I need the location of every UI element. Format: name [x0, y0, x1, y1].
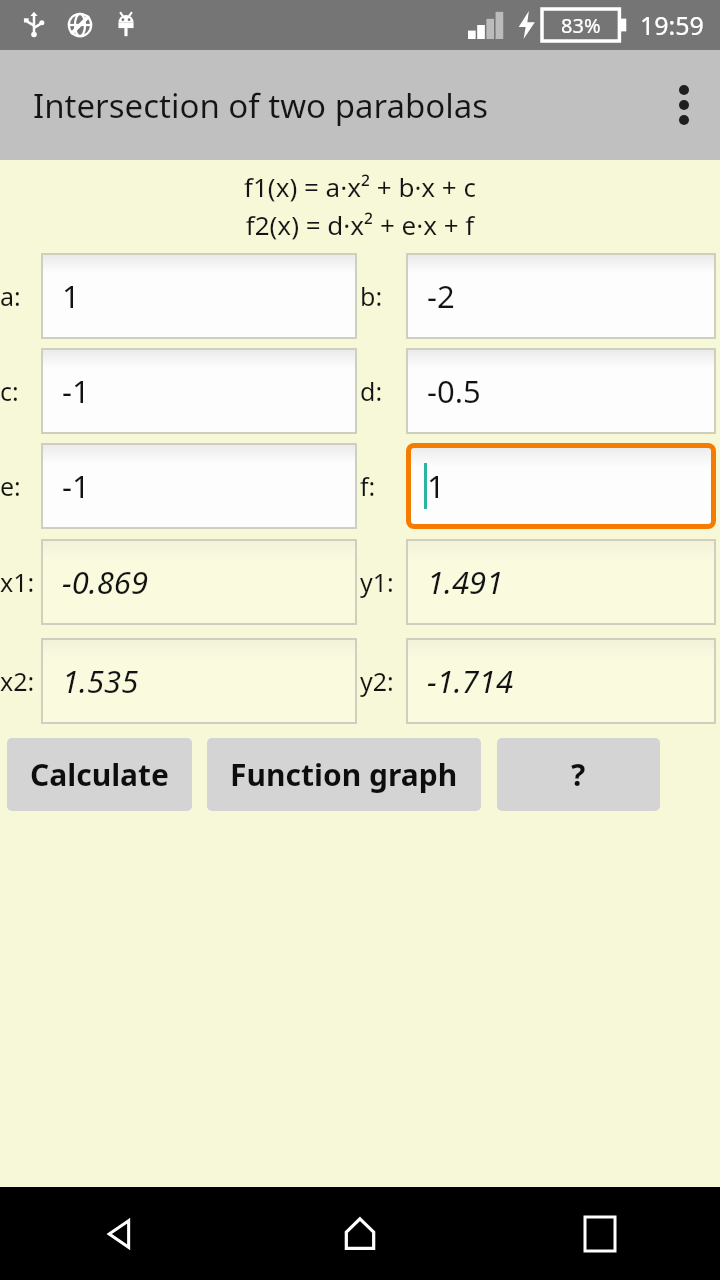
staticText: 1: [62, 275, 80, 317]
staticText: y2:: [360, 664, 394, 698]
button[interactable]: Back: [0, 1187, 240, 1280]
button[interactable]: -0.5: [408, 350, 714, 432]
staticText: Intersection of two parabolas: [33, 83, 489, 128]
button[interactable]: More options: [648, 50, 720, 160]
staticText: -0.869: [62, 561, 148, 603]
button[interactable]: -1.714: [408, 640, 714, 722]
staticText: x1:: [0, 565, 35, 599]
staticText: Function graph: [230, 754, 458, 795]
button[interactable]: Calculate: [7, 738, 192, 811]
staticText: -2: [427, 275, 455, 317]
staticText: 1.535: [62, 660, 139, 702]
staticText: ?: [571, 754, 586, 795]
button[interactable]: -1: [43, 445, 355, 527]
staticText: e:: [0, 469, 21, 503]
staticText: -1.714: [427, 660, 513, 702]
staticText: 19:59: [640, 8, 704, 42]
staticText: f:: [360, 469, 376, 503]
staticText: 1.491: [427, 561, 504, 603]
button[interactable]: 1: [411, 448, 711, 524]
button[interactable]: -1: [43, 350, 355, 432]
staticText: -0.5: [427, 370, 481, 412]
staticText: d:: [360, 374, 383, 408]
staticText: c:: [0, 374, 19, 408]
staticText: f2(x) = d·x² + e·x + f: [0, 207, 720, 242]
staticText: -1: [62, 465, 90, 507]
button[interactable]: Recent apps: [480, 1187, 720, 1280]
button[interactable]: 1.491: [408, 541, 714, 623]
button[interactable]: Function graph: [207, 738, 481, 811]
button[interactable]: Home: [240, 1187, 480, 1280]
button[interactable]: -0.869: [43, 541, 355, 623]
button[interactable]: 1: [43, 255, 355, 337]
staticText: Calculate: [30, 754, 169, 795]
button[interactable]: 1.535: [43, 640, 355, 722]
staticText: x2:: [0, 664, 35, 698]
staticText: 83%: [561, 12, 601, 39]
staticText: b:: [360, 279, 383, 313]
staticText: f1(x) = a·x² + b·x + c: [0, 169, 720, 204]
staticText: 1: [427, 465, 445, 507]
button[interactable]: ?: [497, 738, 660, 811]
staticText: -1: [62, 370, 90, 412]
button[interactable]: -2: [408, 255, 714, 337]
staticText: a:: [0, 279, 21, 313]
staticText: y1:: [360, 565, 394, 599]
